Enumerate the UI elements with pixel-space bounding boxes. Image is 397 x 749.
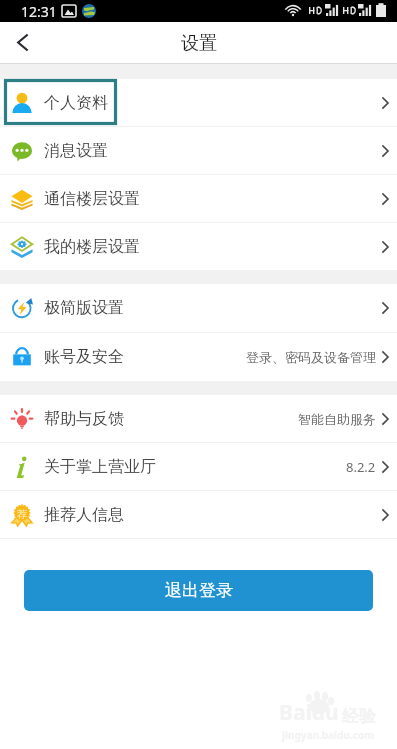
button[interactable]: 个人资料: [0, 79, 397, 126]
staticText: 登录、密码及设备管理: [246, 349, 376, 365]
staticText: 8.2.2: [346, 458, 376, 476]
staticText: 退出登录: [165, 580, 233, 601]
button[interactable]: 极简版设置: [0, 284, 397, 332]
staticText: 账号及安全: [44, 347, 124, 367]
staticText: 个人资料: [44, 93, 108, 113]
staticText: 关于掌上营业厅: [44, 457, 156, 477]
staticText: 12:31: [21, 2, 57, 21]
button[interactable]: 退出登录: [24, 570, 373, 611]
button[interactable]: 荐: [0, 491, 397, 538]
button[interactable]: 账号及安全: [0, 333, 397, 381]
button[interactable]: 帮助与反馈: [0, 395, 397, 442]
staticText: 帮助与反馈: [44, 409, 124, 429]
button[interactable]: 消息设置: [0, 127, 397, 174]
button[interactable]: Back: [0, 22, 44, 63]
staticText: 推荐人信息: [44, 505, 124, 525]
staticText: jingyan.baidu.com: [282, 728, 374, 742]
staticText: 我的楼层设置: [44, 237, 140, 257]
staticText: Baidu: [279, 698, 339, 727]
staticText: 经验: [342, 706, 376, 727]
button[interactable]: 关于掌上营业厅: [0, 443, 397, 490]
button[interactable]: 通信楼层设置: [0, 175, 397, 222]
staticText: 智能自助服务: [298, 411, 376, 427]
staticText: 荐: [17, 508, 27, 521]
staticText: 极简版设置: [44, 298, 124, 318]
staticText: 消息设置: [44, 141, 108, 161]
staticText: 设置: [181, 32, 217, 55]
button[interactable]: 我的楼层设置: [0, 223, 397, 270]
staticText: 通信楼层设置: [44, 189, 140, 209]
